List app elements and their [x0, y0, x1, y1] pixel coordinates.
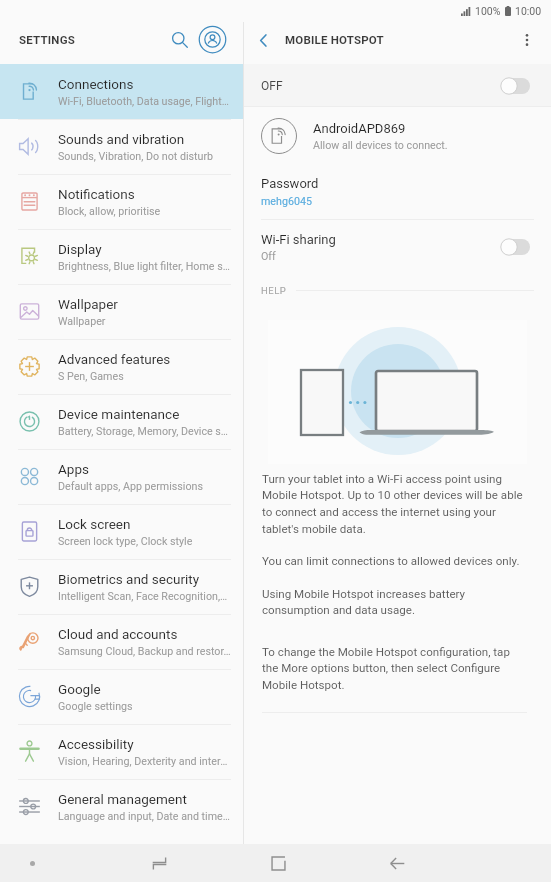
staticText: Battery, Storage, Memory, Device se… — [58, 425, 231, 438]
staticText: S Pen, Games — [58, 370, 124, 383]
staticText: OFF — [261, 79, 283, 93]
button[interactable]: Back — [248, 25, 278, 55]
staticText: AndroidAPD869 — [313, 121, 406, 136]
staticText: You can limit connections to allowed dev… — [262, 554, 520, 568]
staticText: 100% — [475, 5, 501, 17]
button[interactable]: Search — [158, 23, 192, 57]
staticText: Notifications — [58, 186, 135, 202]
button[interactable]: Wallpaper — [0, 284, 243, 339]
staticText: 10:00 — [515, 5, 542, 17]
staticText: Allow all devices to connect. — [313, 139, 448, 152]
button[interactable]: Device maintenance — [0, 394, 243, 449]
button[interactable]: Apps — [0, 449, 243, 504]
staticText: Sounds and vibration — [58, 131, 185, 147]
staticText: Sounds, Vibration, Do not disturb — [58, 150, 214, 163]
staticText: Lock screen — [58, 516, 131, 532]
staticText: Wallpaper — [58, 296, 118, 312]
staticText: Google — [58, 681, 101, 697]
staticText: Display — [58, 241, 102, 257]
button[interactable]: Accessibility — [0, 724, 243, 779]
staticText: Password — [261, 176, 319, 191]
button[interactable]: Wi-Fi sharing — [244, 220, 551, 274]
staticText: Brightness, Blue light filter, Home sc… — [58, 260, 231, 273]
staticText: Device maintenance — [58, 406, 180, 422]
staticText: Using Mobile Hotspot increases battery c… — [262, 587, 527, 617]
staticText: MOBILE HOTSPOT — [285, 33, 384, 46]
button[interactable]: Google — [0, 669, 243, 724]
staticText: Wi-Fi sharing — [261, 232, 336, 247]
button[interactable]: Lock screen — [0, 504, 243, 559]
staticText: Vision, Hearing, Dexterity and intera… — [58, 755, 231, 768]
button[interactable]: General management — [0, 779, 243, 834]
staticText: Off — [261, 250, 276, 263]
staticText: Connections — [58, 76, 134, 92]
staticText: Turn your tablet into a Wi-Fi access poi… — [262, 472, 527, 536]
staticText: HELP — [261, 285, 287, 296]
button[interactable]: Connections — [0, 64, 243, 119]
button[interactable]: Recent apps — [119, 844, 199, 882]
button[interactable]: Back — [357, 844, 437, 882]
staticText: Screen lock type, Clock style — [58, 535, 193, 548]
staticText: Default apps, App permissions — [58, 480, 203, 493]
button[interactable]: Advanced features — [0, 339, 243, 394]
staticText: Samsung Cloud, Backup and restor… — [58, 645, 231, 658]
button[interactable]: Display — [0, 229, 243, 284]
staticText: Apps — [58, 461, 89, 477]
button[interactable]: OFF — [244, 64, 551, 107]
staticText: Cloud and accounts — [58, 626, 178, 642]
button[interactable]: More options — [511, 24, 543, 56]
staticText: To change the Mobile Hotspot configurati… — [262, 645, 527, 692]
button[interactable]: Cloud and accounts — [0, 614, 243, 669]
staticText: Language and input, Date and time,… — [58, 810, 231, 823]
staticText: Google settings — [58, 700, 133, 713]
staticText: Accessibility — [58, 736, 134, 752]
staticText: mehg6045 — [261, 195, 312, 208]
button[interactable]: Account — [194, 22, 230, 57]
button[interactable]: Biometrics and security — [0, 559, 243, 614]
button[interactable]: Sounds and vibration — [0, 119, 243, 174]
staticText: Intelligent Scan, Face Recognition,… — [58, 590, 228, 603]
staticText: Wallpaper — [58, 315, 106, 328]
staticText: Block, allow, prioritise — [58, 205, 161, 218]
button[interactable]: AndroidAPD869 — [244, 107, 551, 165]
staticText: General management — [58, 791, 187, 807]
button[interactable]: Home — [238, 844, 318, 882]
staticText: Wi-Fi, Bluetooth, Data usage, Flight… — [58, 95, 229, 108]
staticText: Advanced features — [58, 351, 171, 367]
button[interactable]: Password — [244, 165, 551, 219]
staticText: Biometrics and security — [58, 571, 200, 587]
button[interactable]: Notifications — [0, 174, 243, 229]
staticText: SETTINGS — [19, 33, 75, 46]
